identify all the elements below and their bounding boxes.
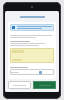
button[interactable]: Select xyxy=(10,69,54,75)
button[interactable] xyxy=(33,81,56,89)
button[interactable] xyxy=(8,81,31,89)
other: Information xyxy=(12,26,15,29)
button[interactable]: Information xyxy=(10,24,54,31)
other: Select xyxy=(39,71,42,74)
button[interactable] xyxy=(10,48,54,63)
